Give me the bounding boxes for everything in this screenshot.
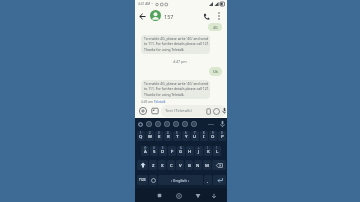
staticText: ‹ English › [171,178,190,183]
staticText: A [144,148,147,154]
button[interactable] [209,191,218,200]
button[interactable]: D [159,146,167,156]
staticText: + [198,146,200,150]
button[interactable]: B [185,160,193,170]
button[interactable] [173,121,179,127]
button[interactable]: G [177,146,185,156]
staticText: ?123 [139,178,146,182]
button[interactable]: Y [182,131,190,141]
button[interactable] [137,121,144,128]
button[interactable]: Text (Teletalk) [161,105,226,117]
staticText: . [207,178,209,185]
button[interactable] [182,121,188,127]
staticText: 4G [213,25,218,30]
staticText: # [153,146,155,150]
staticText: @ [144,146,147,150]
button[interactable] [150,10,161,21]
staticText: Y [185,133,188,139]
staticText: I [203,133,205,139]
button[interactable]: N [194,160,202,170]
staticText: U [193,133,197,139]
staticText: M [205,162,209,168]
staticText: H [188,148,192,154]
button[interactable]: F [168,146,176,156]
button[interactable] [138,106,148,116]
button[interactable]: S [150,146,158,156]
button[interactable]: H [186,146,194,156]
button[interactable]: A [141,146,149,156]
staticText: T [176,133,179,139]
staticText: 7 [194,131,196,135]
staticText: S [153,148,156,154]
staticText: K [207,148,210,154]
button[interactable]: 4G [208,23,222,31]
button[interactable] [150,106,160,116]
button[interactable] [174,191,183,200]
staticText: F [171,148,174,154]
button[interactable] [146,121,152,127]
staticText: 157 [164,13,174,20]
button[interactable] [213,175,226,185]
button[interactable]: L [213,146,221,156]
button[interactable] [137,160,148,170]
staticText: 0 [221,131,223,135]
staticText: 8 [203,131,205,135]
button[interactable] [191,121,197,127]
button[interactable]: . [204,175,212,185]
button[interactable]: To enable 4G, please write '4G' and send… [141,80,210,99]
staticText: R [167,133,170,139]
staticText: N [196,162,200,168]
staticText: X [161,162,164,168]
button[interactable]: ?123 [137,175,148,185]
button[interactable]: W [146,131,154,141]
button[interactable]: T [173,131,181,141]
button[interactable]: To enable 4G, please write '4G' and send… [141,35,210,54]
button[interactable]: C [167,160,175,170]
button[interactable]: R [164,131,172,141]
staticText: 4 [167,131,169,135]
button[interactable]: Z [149,160,157,170]
button[interactable] [164,121,170,127]
staticText: 4:49 am [141,100,153,104]
button[interactable] [193,191,202,200]
button[interactable]: E [155,131,163,141]
staticText: & [180,146,182,150]
button[interactable]: O [209,131,217,141]
staticText: 3 [158,131,160,135]
staticText: To enable 4G, please write '4G' and send… [144,81,210,97]
button[interactable]: Ok [209,67,222,76]
button[interactable]: M [203,160,211,170]
button[interactable]: I [200,131,208,141]
button[interactable] [149,175,157,185]
button[interactable]: U [191,131,199,141]
staticText: C [170,162,173,168]
button[interactable] [201,11,211,21]
staticText: 4:47 pm [173,59,187,64]
staticText: 1 [140,131,142,135]
button[interactable] [155,121,161,127]
button[interactable]: X [158,160,166,170]
staticText: To enable 4G, please write '4G' and send… [144,36,210,52]
button[interactable]: K [204,146,212,156]
staticText: D [161,148,165,154]
staticText: P [221,133,224,139]
button[interactable]: ‹ English › [158,175,203,185]
staticText: J [198,148,200,154]
button[interactable]: P [218,131,226,141]
staticText: 2 [149,131,151,135]
button[interactable]: Q [137,131,145,141]
button[interactable]: J [195,146,203,156]
button[interactable] [155,191,164,200]
staticText: Ok [213,69,218,74]
staticText: Z [152,162,155,168]
staticText: W [148,133,152,139]
button[interactable]: V [176,160,184,170]
staticText: 9 [212,131,214,135]
button[interactable] [137,10,147,22]
staticText: B [188,162,191,168]
staticText: $ [162,146,164,150]
staticText: G [179,148,183,154]
staticText: 5 [176,131,178,135]
button[interactable] [212,160,226,170]
staticText: L [216,148,219,154]
